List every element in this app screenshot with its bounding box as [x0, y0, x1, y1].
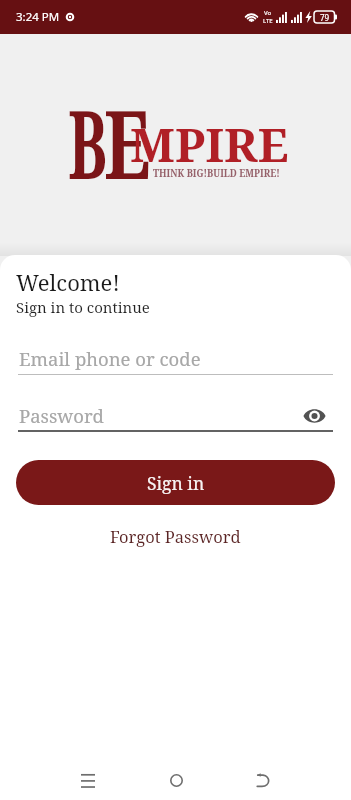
- button[interactable]: Home: [154, 760, 198, 800]
- staticText: Welcome!: [16, 267, 120, 297]
- staticText: 79: [320, 12, 330, 23]
- staticText: Sign in to continue: [16, 297, 150, 317]
- staticText: B: [68, 79, 108, 207]
- staticText: 3:24 PM: [16, 9, 60, 25]
- staticText: Sign in: [147, 471, 205, 495]
- button[interactable]: Sign in: [16, 460, 335, 505]
- button[interactable]: Back: [241, 760, 285, 800]
- staticText: Password: [19, 403, 104, 428]
- staticText: MPIRE: [130, 114, 290, 175]
- staticText: E: [104, 79, 151, 207]
- button[interactable]: Recent apps: [66, 760, 110, 800]
- button[interactable]: Password: [18, 403, 333, 432]
- staticText: LTE: [263, 17, 273, 25]
- staticText: Vo: [264, 9, 272, 17]
- button[interactable]: Show password: [300, 405, 328, 427]
- button[interactable]: Email phone or code: [18, 346, 333, 375]
- button[interactable]: Forgot Password: [100, 520, 251, 552]
- staticText: Email phone or code: [19, 346, 201, 371]
- staticText: Forgot Password: [110, 525, 241, 547]
- staticText: THINK BIG!BUILD EMPIRE!: [153, 166, 280, 180]
